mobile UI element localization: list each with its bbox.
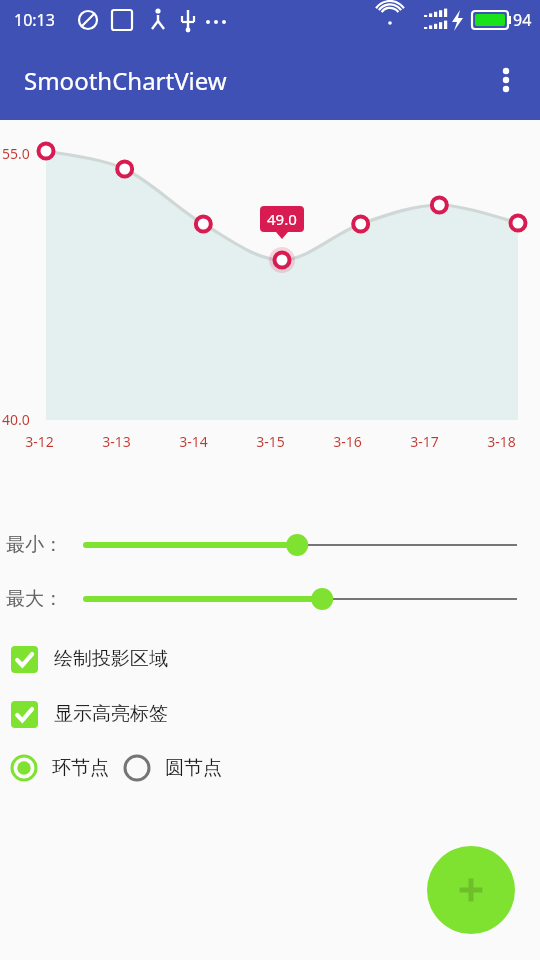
staticText: 圆节点 (165, 756, 222, 780)
staticText: 3-18 (487, 432, 516, 451)
button[interactable]: 环节点 (0, 754, 109, 782)
button[interactable] (86, 582, 517, 616)
staticText: 3-14 (179, 432, 208, 451)
staticText: 显示高亮标签 (54, 702, 168, 726)
staticText: 94 (513, 9, 532, 31)
staticText: 40.0 (2, 410, 30, 429)
staticText: 10:13 (14, 9, 55, 31)
staticText: 55.0 (2, 144, 30, 163)
staticText: 3-17 (410, 432, 439, 451)
staticText: 3-13 (102, 432, 131, 451)
staticText: 49.0 (267, 209, 297, 229)
staticText: 3-12 (25, 432, 54, 451)
button[interactable]: More options (482, 56, 530, 104)
button[interactable]: 圆节点 (123, 754, 222, 782)
staticText: 3-16 (333, 432, 362, 451)
staticText: 最大： (6, 587, 86, 611)
button[interactable] (86, 528, 517, 562)
button[interactable]: Add (427, 846, 515, 934)
staticText: 环节点 (52, 756, 109, 780)
staticText: SmoothChartView (24, 64, 227, 97)
button[interactable]: 显示高亮标签 (0, 697, 540, 731)
staticText: 绘制投影区域 (54, 647, 168, 671)
button[interactable]: 绘制投影区域 (0, 642, 540, 676)
staticText: 最小： (6, 533, 86, 557)
staticText: 3-15 (256, 432, 285, 451)
